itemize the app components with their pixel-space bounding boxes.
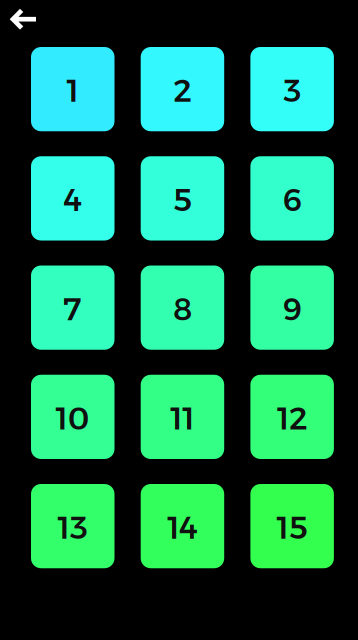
button[interactable]: 13 <box>31 484 114 568</box>
staticText: 11 <box>170 400 194 437</box>
staticText: 3 <box>283 72 301 110</box>
staticText: 6 <box>283 181 302 219</box>
button[interactable]: 14 <box>141 484 224 568</box>
button[interactable]: Back <box>0 0 48 38</box>
staticText: 14 <box>167 509 197 547</box>
button[interactable]: 6 <box>250 156 334 240</box>
staticText: 13 <box>58 509 88 547</box>
staticText: 15 <box>277 509 308 547</box>
button[interactable]: 11 <box>141 375 224 459</box>
button[interactable]: 15 <box>250 484 334 568</box>
staticText: 8 <box>173 291 192 328</box>
staticText: 10 <box>56 400 90 437</box>
staticText: 12 <box>277 400 307 437</box>
button[interactable]: 12 <box>250 375 334 459</box>
button[interactable]: 1 <box>31 47 114 131</box>
staticText: 9 <box>283 291 302 328</box>
button[interactable]: 9 <box>250 265 334 350</box>
staticText: 2 <box>173 72 191 110</box>
button[interactable]: 8 <box>141 265 224 350</box>
button[interactable]: 7 <box>31 265 114 350</box>
button[interactable]: 5 <box>141 156 224 240</box>
staticText: 7 <box>64 291 82 328</box>
button[interactable]: 3 <box>250 47 334 131</box>
staticText: 4 <box>64 181 82 219</box>
button[interactable]: 4 <box>31 156 114 240</box>
staticText: 5 <box>173 181 192 219</box>
button[interactable]: 10 <box>31 375 114 459</box>
staticText: 1 <box>67 72 79 110</box>
button[interactable]: 2 <box>141 47 224 131</box>
